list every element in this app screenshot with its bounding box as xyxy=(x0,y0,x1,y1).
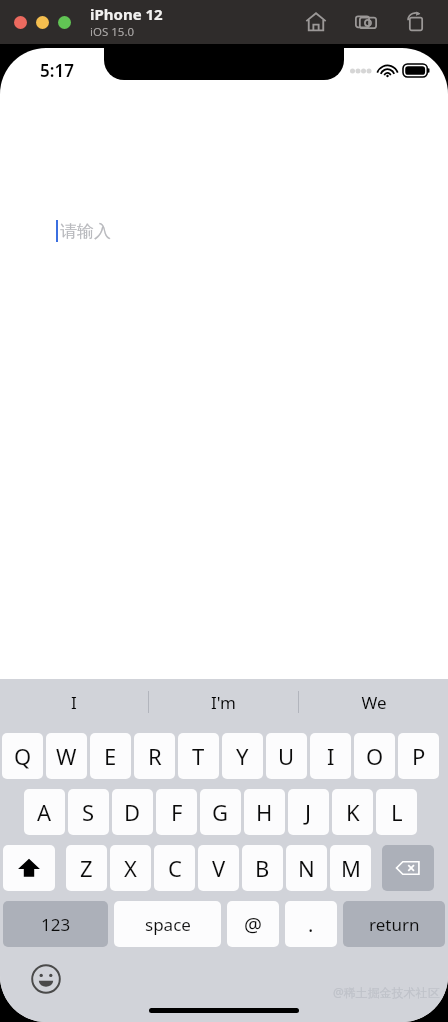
staticText: S xyxy=(82,797,95,827)
button[interactable]: I xyxy=(0,679,148,725)
button[interactable]: L xyxy=(376,789,417,835)
staticText: P xyxy=(412,741,426,771)
button[interactable]: 123 xyxy=(3,901,108,947)
staticText: O xyxy=(366,741,384,771)
staticText: . xyxy=(308,911,314,938)
button[interactable]: I'm xyxy=(149,679,298,725)
button[interactable]: T xyxy=(178,733,219,779)
button[interactable]: Rotate xyxy=(402,8,430,36)
button[interactable]: F xyxy=(156,789,197,835)
staticText: iOS 15.0 xyxy=(90,24,135,40)
button[interactable]: Z xyxy=(66,845,107,891)
staticText: I'm xyxy=(211,691,236,714)
staticText: Z xyxy=(80,853,93,883)
button[interactable]: @ xyxy=(227,901,279,947)
button[interactable]: G xyxy=(200,789,241,835)
staticText: X xyxy=(124,853,137,883)
button[interactable]: U xyxy=(266,733,307,779)
button[interactable]: . xyxy=(285,901,337,947)
button[interactable]: We xyxy=(299,679,448,725)
staticText: V xyxy=(212,853,226,883)
staticText: @ xyxy=(244,911,262,938)
button[interactable]: Minimize xyxy=(36,16,49,29)
button[interactable]: P xyxy=(398,733,439,779)
staticText: J xyxy=(305,797,312,827)
staticText: Q xyxy=(14,741,32,771)
button[interactable]: V xyxy=(198,845,239,891)
staticText: E xyxy=(104,741,117,771)
staticText: return xyxy=(369,913,420,936)
staticText: 5:17 xyxy=(40,59,74,82)
button[interactable]: S xyxy=(68,789,109,835)
staticText: @稀土掘金技术社区 xyxy=(333,984,440,1000)
button[interactable]: 请输入 xyxy=(0,208,448,254)
staticText: W xyxy=(56,741,77,771)
button[interactable]: Q xyxy=(2,733,43,779)
staticText: K xyxy=(346,797,360,827)
staticText: A xyxy=(37,797,52,827)
button[interactable]: O xyxy=(354,733,395,779)
staticText: B xyxy=(255,853,270,883)
button[interactable]: N xyxy=(286,845,327,891)
button[interactable]: space xyxy=(114,901,221,947)
staticText: N xyxy=(298,853,315,883)
button[interactable]: Close xyxy=(14,16,27,29)
button[interactable]: D xyxy=(112,789,153,835)
staticText: Y xyxy=(236,741,249,771)
button[interactable]: R xyxy=(134,733,175,779)
button[interactable]: Y xyxy=(222,733,263,779)
staticText: F xyxy=(171,797,183,827)
button[interactable]: W xyxy=(46,733,87,779)
button[interactable]: I xyxy=(310,733,351,779)
staticText: G xyxy=(212,797,229,827)
button[interactable]: Emoji xyxy=(30,963,62,995)
staticText: T xyxy=(192,741,205,771)
button[interactable]: B xyxy=(242,845,283,891)
staticText: 123 xyxy=(41,913,71,936)
staticText: iPhone 12 xyxy=(90,4,163,24)
staticText: C xyxy=(168,853,182,883)
button[interactable]: Screenshot xyxy=(352,8,380,36)
button[interactable]: C xyxy=(154,845,195,891)
staticText: 请输入 xyxy=(60,221,111,242)
staticText: L xyxy=(391,797,403,827)
button[interactable]: Zoom xyxy=(58,16,71,29)
button[interactable]: Backspace xyxy=(382,845,434,891)
staticText: D xyxy=(124,797,141,827)
button[interactable]: K xyxy=(332,789,373,835)
staticText: M xyxy=(341,853,361,883)
button[interactable]: return xyxy=(343,901,445,947)
staticText: I xyxy=(327,741,335,771)
button[interactable]: H xyxy=(244,789,285,835)
staticText: We xyxy=(361,691,387,714)
button[interactable]: M xyxy=(330,845,371,891)
button[interactable]: Shift xyxy=(3,845,55,891)
staticText: H xyxy=(256,797,273,827)
button[interactable]: J xyxy=(288,789,329,835)
button[interactable]: Home xyxy=(302,8,330,36)
button[interactable]: A xyxy=(24,789,65,835)
staticText: space xyxy=(145,913,191,936)
staticText: R xyxy=(148,741,162,771)
staticText: U xyxy=(278,741,295,771)
button[interactable]: E xyxy=(90,733,131,779)
staticText: I xyxy=(71,691,77,714)
button[interactable]: X xyxy=(110,845,151,891)
